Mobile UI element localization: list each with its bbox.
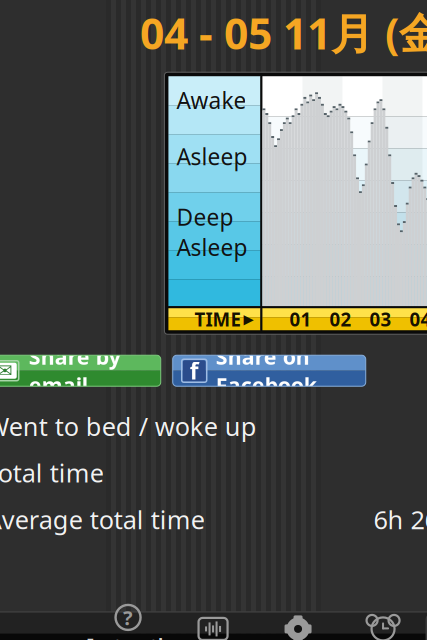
staticText: 03 [369, 307, 391, 332]
staticText: Instructions [87, 633, 169, 640]
staticText: ? [123, 604, 133, 631]
staticText: Total time [0, 456, 104, 489]
staticText: Share on Facebook [216, 342, 317, 399]
staticText: TIME [194, 307, 240, 332]
staticText: 04 - 05 11月 (金) [140, 5, 427, 61]
button[interactable]: f [173, 355, 366, 386]
staticText: ▶ [243, 312, 253, 327]
button[interactable]: ? [86, 613, 171, 640]
staticText: Deep [176, 202, 233, 232]
staticText: 6h 26m (180 nights) [373, 502, 427, 536]
button[interactable]: Statistics [426, 613, 427, 640]
staticText: Asleep [176, 141, 247, 171]
staticText: Share by email [29, 342, 121, 399]
staticText: Went to bed / woke up [0, 409, 257, 443]
button[interactable]: ✉ [0, 355, 161, 386]
staticText: Average total time [0, 502, 205, 536]
button[interactable]: Test [171, 613, 256, 640]
staticText: ✉ [0, 360, 13, 381]
staticText: 04 [409, 307, 427, 332]
staticText: Awake [176, 85, 246, 115]
button[interactable]: Settings [256, 613, 341, 640]
staticText: f [190, 356, 199, 386]
button[interactable]: Alarm [341, 613, 426, 640]
staticText: 01 [289, 307, 311, 332]
staticText: 02 [329, 307, 351, 332]
staticText: Asleep [176, 232, 247, 262]
